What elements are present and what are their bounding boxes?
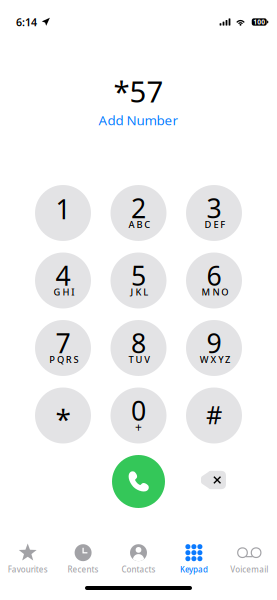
staticText: Voicemail xyxy=(230,564,268,575)
staticText: 5 xyxy=(131,258,146,293)
staticText: 8 xyxy=(131,325,146,361)
button[interactable]: Delete xyxy=(193,463,233,497)
button[interactable]: 8 xyxy=(110,320,166,376)
button[interactable]: * xyxy=(35,387,91,443)
staticText: TUV xyxy=(129,353,150,366)
staticText: Contacts xyxy=(121,564,155,575)
button[interactable]: Voicemail xyxy=(222,536,277,582)
button[interactable]: 5 xyxy=(110,252,166,308)
button[interactable]: Call xyxy=(112,455,165,508)
staticText: 6:14 xyxy=(16,15,37,29)
staticText: *57 xyxy=(113,71,163,110)
staticText: 2 xyxy=(131,190,146,226)
staticText: MNO xyxy=(202,286,228,298)
button[interactable]: # xyxy=(186,387,242,443)
staticText: 1 xyxy=(55,191,70,227)
button[interactable]: 6 xyxy=(186,252,242,308)
staticText: # xyxy=(206,398,222,431)
staticText: * xyxy=(55,400,70,438)
button[interactable]: 1 xyxy=(35,185,91,241)
button[interactable]: Contacts xyxy=(111,536,166,582)
staticText: JKL xyxy=(131,286,148,298)
button[interactable]: Keypad xyxy=(166,536,222,582)
staticText: Favourites xyxy=(8,564,48,575)
button[interactable]: 9 xyxy=(186,320,242,376)
button[interactable]: Add Number xyxy=(83,110,193,130)
staticText: WXYZ xyxy=(200,353,230,366)
staticText: + xyxy=(135,419,142,435)
staticText: Keypad xyxy=(180,564,208,575)
staticText: 0 xyxy=(131,393,146,428)
staticText: 4 xyxy=(55,258,70,293)
button[interactable]: 0 xyxy=(110,387,166,443)
staticText: GHI xyxy=(54,286,74,298)
button[interactable]: Favourites xyxy=(0,536,55,582)
button[interactable]: Recents xyxy=(55,536,111,582)
staticText: DEF xyxy=(205,218,225,231)
staticText: 100 xyxy=(253,18,265,26)
button[interactable]: 4 xyxy=(35,252,91,308)
button[interactable]: 3 xyxy=(186,185,242,241)
staticText: 3 xyxy=(206,190,221,226)
button[interactable]: 7 xyxy=(35,320,91,376)
staticText: PQRS xyxy=(49,353,79,366)
staticText: Add Number xyxy=(98,111,178,129)
staticText: 6 xyxy=(206,258,221,293)
staticText: 7 xyxy=(55,325,70,361)
staticText: ABC xyxy=(129,218,150,231)
staticText: Recents xyxy=(68,564,99,575)
button[interactable]: 2 xyxy=(110,185,166,241)
staticText: 9 xyxy=(206,325,221,361)
